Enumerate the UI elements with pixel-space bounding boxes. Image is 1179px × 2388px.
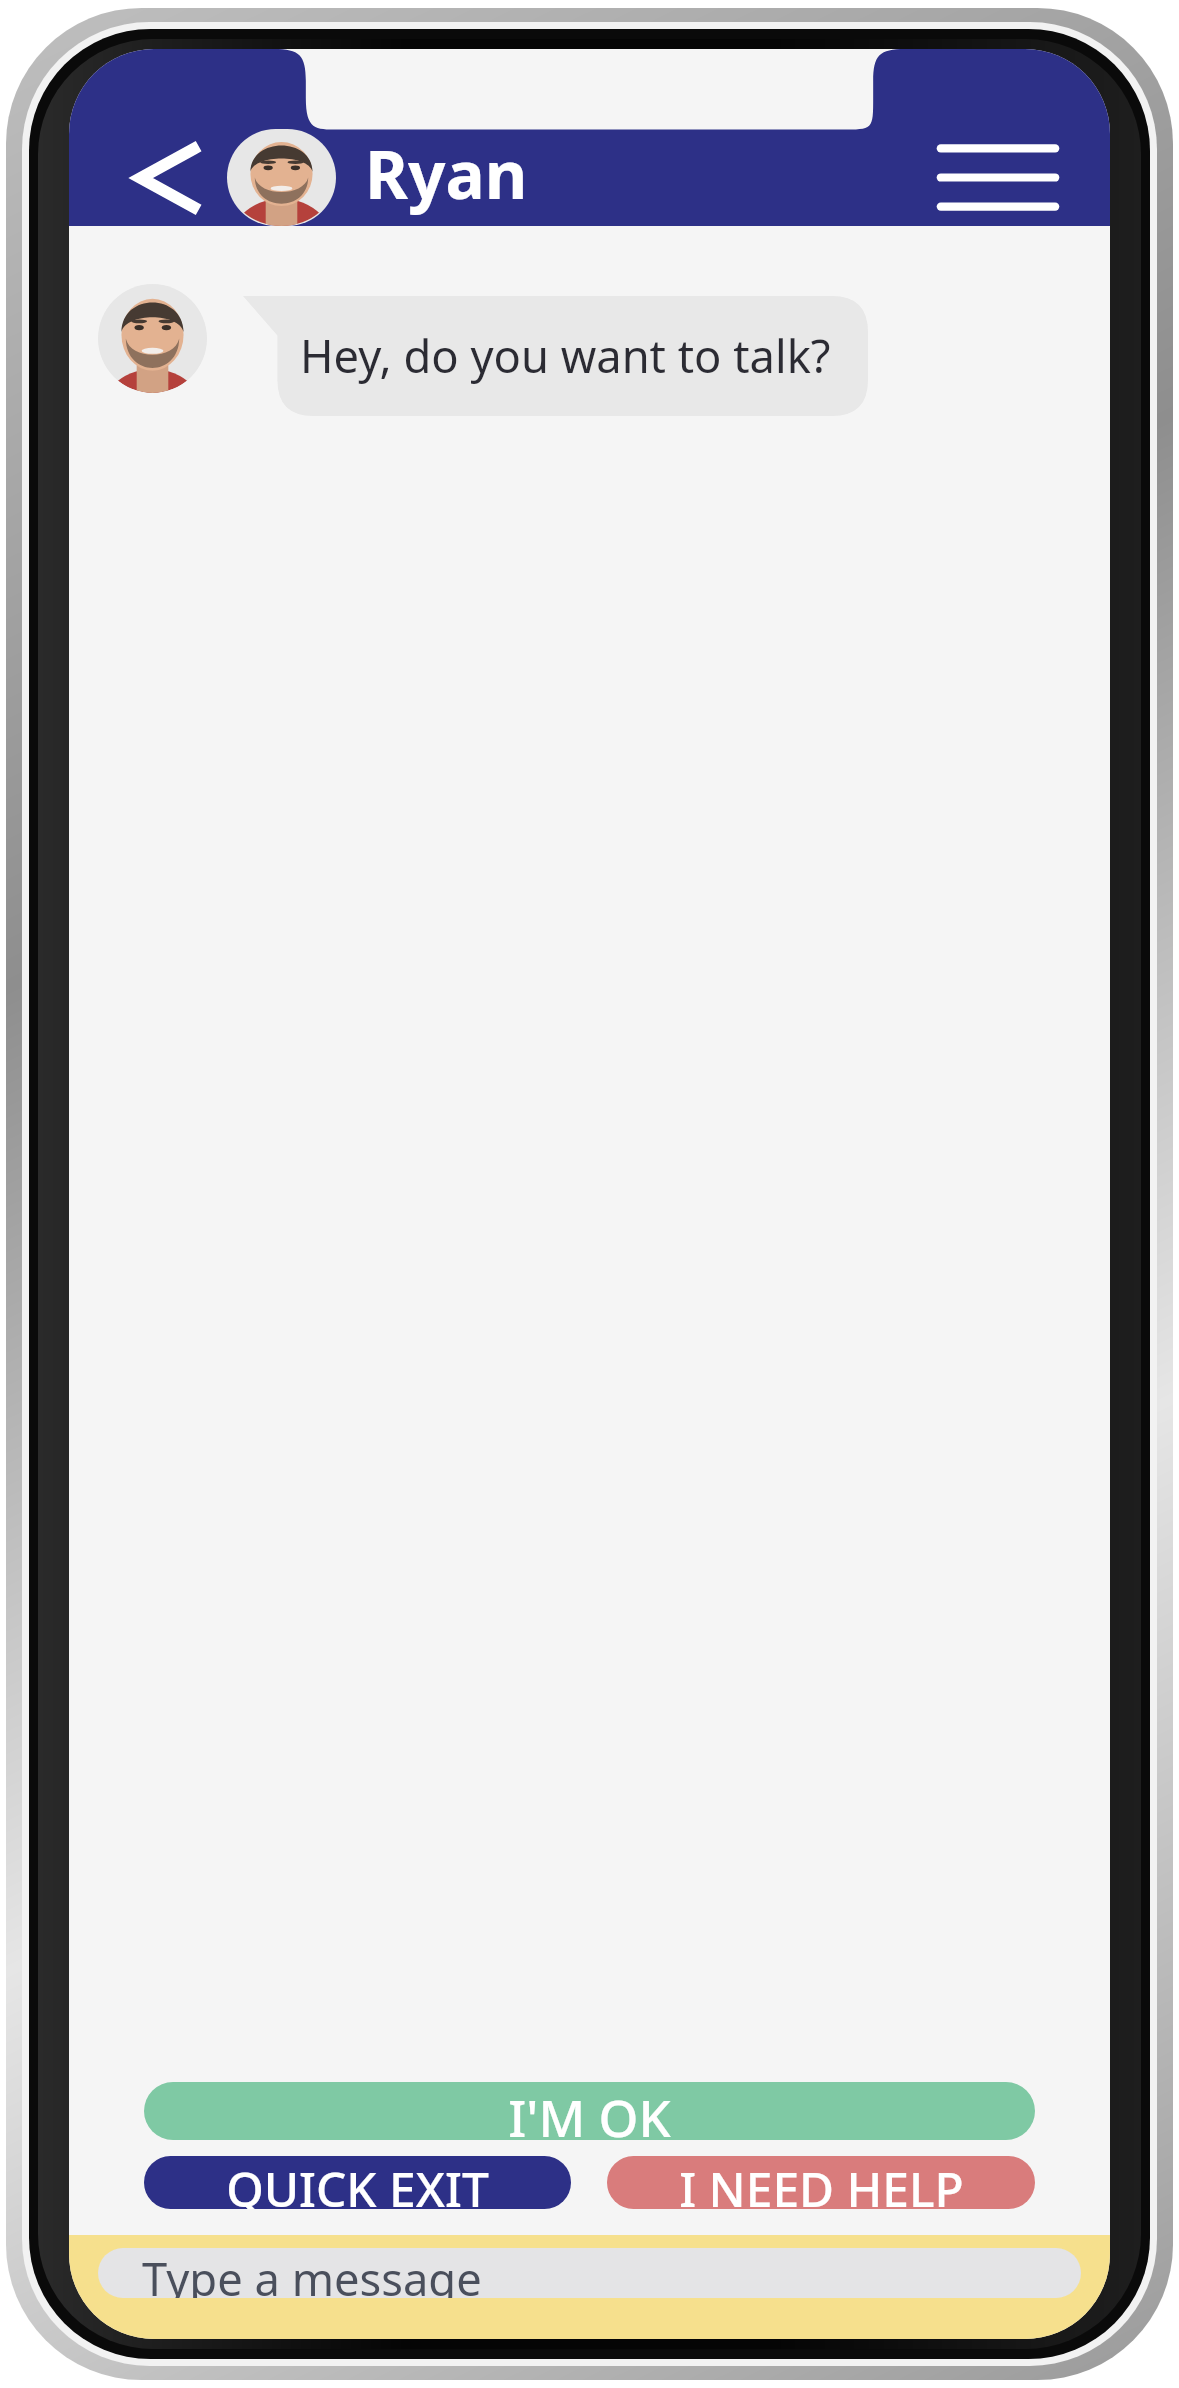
staticText: Ryan [365, 129, 528, 218]
button[interactable]: Hey, do you want to talk? [243, 296, 868, 416]
staticText: QUICK EXIT [226, 2156, 489, 2209]
button[interactable]: I NEED HELP [607, 2156, 1035, 2209]
button[interactable]: I'M OK [144, 2082, 1035, 2140]
button[interactable]: Menu [933, 129, 1063, 226]
staticText: I'M OK [508, 2082, 671, 2140]
staticText: Type a message [142, 2248, 482, 2298]
button[interactable]: QUICK EXIT [144, 2156, 571, 2209]
staticText: Hey, do you want to talk? [300, 325, 831, 387]
staticText: I NEED HELP [679, 2156, 964, 2209]
button[interactable]: Back [116, 134, 204, 222]
button[interactable]: Type a message [98, 2248, 1081, 2298]
